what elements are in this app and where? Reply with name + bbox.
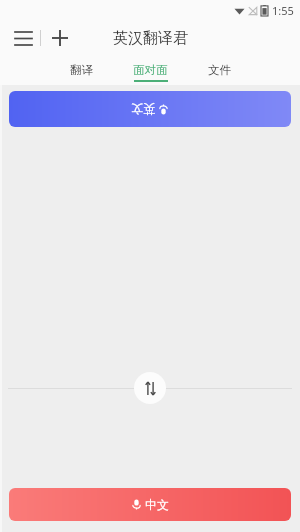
staticText: 文件 (208, 63, 231, 77)
staticText: 英文 (131, 102, 155, 117)
staticText: 翻译 (70, 63, 93, 77)
button[interactable]: 英文 (9, 91, 291, 127)
button[interactable]: 面对面 (131, 56, 170, 85)
staticText: 中文 (145, 497, 169, 512)
button[interactable]: Menu (10, 25, 36, 51)
button[interactable]: Swap languages (134, 372, 166, 404)
staticText: 英汉翻译君 (113, 29, 188, 48)
button[interactable]: 中文 (9, 488, 291, 521)
button[interactable]: 翻译 (68, 56, 95, 85)
button[interactable]: Add (47, 25, 73, 51)
button[interactable]: 文件 (206, 56, 233, 85)
staticText: 面对面 (133, 63, 168, 77)
staticText: 1:55 (272, 3, 294, 18)
